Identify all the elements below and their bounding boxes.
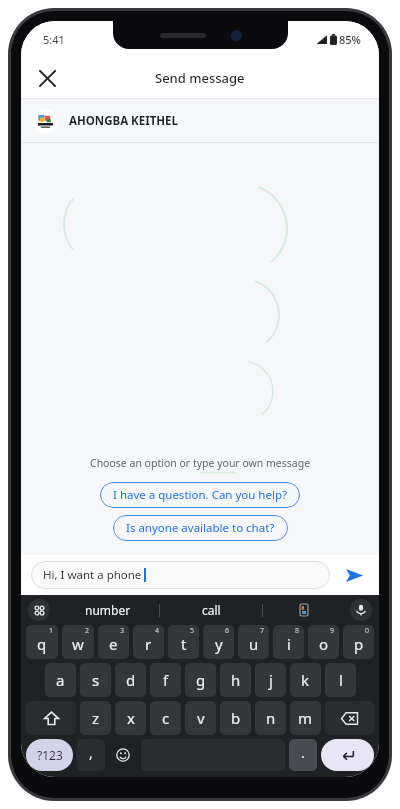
button[interactable]: j [255,663,286,697]
button[interactable]: I have a question. Can you help? [100,482,300,508]
staticText: a [56,670,65,690]
staticText: s [92,670,100,690]
staticText: 1 [49,626,54,636]
button[interactable]: call [160,595,262,625]
button[interactable]: l [325,663,356,697]
staticText: v [197,708,205,728]
staticText: h [231,670,241,690]
button[interactable]: x [115,701,146,735]
button[interactable]: ?123 [26,739,73,771]
staticText: 85% [339,32,361,47]
staticText: n [266,708,276,728]
staticText: t [181,634,187,654]
button[interactable]: i [273,625,304,659]
button[interactable]: c [150,701,181,735]
button[interactable]: Hi, I want a phone [31,561,330,589]
button[interactable]: number [57,595,159,625]
staticText: q [37,634,47,654]
staticText: j [269,670,273,690]
staticText: k [301,670,310,690]
staticText: c [162,708,170,728]
staticText: call [202,602,221,618]
button[interactable]: p [343,625,374,659]
staticText: l [339,670,343,690]
staticText: d [126,670,136,690]
button[interactable]: Sticker [263,595,345,625]
staticText: AHONGBA KEITHEL [69,113,178,129]
button[interactable]: a [45,663,76,697]
button[interactable]: t [168,625,199,659]
staticText: 8 [295,626,300,636]
staticText: u [249,634,259,654]
button[interactable]: n [255,701,286,735]
button[interactable]: w [62,625,94,659]
button[interactable]: Send [339,560,369,590]
staticText: x [127,708,135,728]
staticText: 6 [225,626,230,636]
button[interactable]: Enter [321,739,374,771]
staticText: g [196,670,206,690]
staticText: 5:41 [43,32,65,47]
button[interactable]: m [290,701,321,735]
button[interactable]: r [133,625,164,659]
button[interactable]: f [150,663,181,697]
staticText: 7 [260,626,265,636]
staticText: number [85,602,131,618]
staticText: p [354,634,364,654]
staticText: r [145,634,152,654]
button[interactable]: Backspace [325,701,374,735]
staticText: o [319,634,329,654]
button[interactable]: Voice input [350,599,372,621]
button[interactable]: s [80,663,111,697]
staticText: . [301,743,305,762]
button[interactable]: d [115,663,146,697]
button[interactable]: Emoji [109,739,137,771]
staticText: 5 [190,626,195,636]
button[interactable]: e [98,625,129,659]
button[interactable]: b [220,701,251,735]
staticText: 0 [365,626,370,636]
staticText: 9 [330,626,335,636]
staticText: y [215,634,223,654]
staticText: f [163,670,169,690]
staticText: b [231,708,241,728]
staticText: ?123 [37,747,63,763]
staticText: 4 [155,626,160,636]
staticText: e [109,634,118,654]
button[interactable]: y [203,625,234,659]
button[interactable]: Shift [26,701,76,735]
staticText: 2 [85,626,90,636]
button[interactable]: . [289,739,317,771]
button[interactable]: Close [29,60,65,96]
button[interactable]: u [238,625,269,659]
staticText: I have a question. Can you help? [113,487,287,503]
button[interactable]: o [308,625,339,659]
button[interactable]: z [80,701,111,735]
staticText: w [72,634,84,654]
button[interactable]: q [26,625,58,659]
button[interactable]: AHONGBA KEITHEL [21,99,379,142]
button[interactable]: g [185,663,216,697]
button[interactable]: , [77,739,105,771]
button[interactable]: Is anyone available to chat? [113,515,288,541]
staticText: Choose an option or type your own messag… [90,456,311,470]
button[interactable]: h [220,663,251,697]
button[interactable]: Toolbar [28,599,50,621]
staticText: i [287,634,291,654]
staticText: Send message [155,69,245,87]
staticText: , [89,743,93,762]
button[interactable]: k [290,663,321,697]
staticText: Is anyone available to chat? [126,520,275,536]
staticText: Hi, I want a phone [43,567,142,583]
staticText: z [92,708,100,728]
staticText: m [298,708,313,728]
button[interactable]: v [185,701,216,735]
staticText: 3 [120,626,125,636]
